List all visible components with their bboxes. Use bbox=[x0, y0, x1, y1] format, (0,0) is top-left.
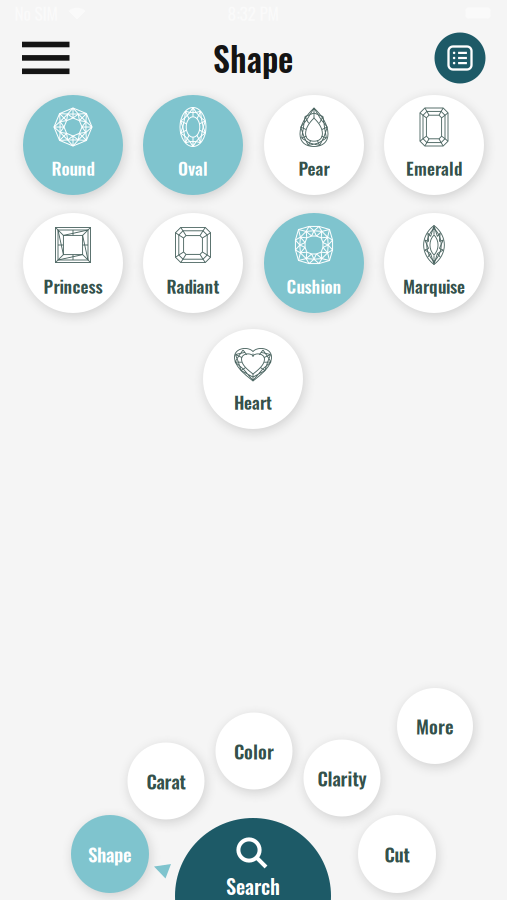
staticText: Cut bbox=[384, 840, 409, 868]
button[interactable]: Emerald bbox=[384, 95, 484, 195]
staticText: Heart bbox=[234, 389, 272, 415]
button[interactable]: Carat bbox=[127, 742, 204, 819]
staticText: Oval bbox=[178, 155, 208, 181]
button[interactable]: Oval bbox=[143, 95, 243, 195]
button[interactable]: Menu bbox=[8, 27, 84, 88]
staticText: Cushion bbox=[286, 273, 341, 299]
staticText: More bbox=[416, 712, 454, 740]
staticText: Clarity bbox=[317, 764, 366, 792]
staticText: Marquise bbox=[403, 273, 465, 299]
button[interactable]: List view bbox=[434, 32, 485, 83]
button[interactable]: Heart bbox=[203, 329, 303, 429]
staticText: Search bbox=[226, 871, 280, 900]
staticText: Radiant bbox=[166, 273, 219, 299]
button[interactable]: Color bbox=[215, 712, 292, 789]
staticText: Carat bbox=[146, 767, 185, 795]
staticText: Shape bbox=[88, 840, 132, 868]
staticText: Shape bbox=[213, 33, 293, 83]
staticText: Princess bbox=[43, 273, 102, 299]
button[interactable]: Round bbox=[23, 95, 123, 195]
staticText: Round bbox=[51, 155, 94, 181]
staticText: Pear bbox=[298, 155, 329, 181]
staticText: Emerald bbox=[406, 155, 462, 181]
button[interactable]: Clarity bbox=[303, 739, 380, 816]
button[interactable]: Marquise bbox=[384, 213, 484, 313]
button[interactable]: Cushion bbox=[264, 213, 364, 313]
button[interactable]: More bbox=[397, 688, 473, 764]
button[interactable]: Cut bbox=[358, 815, 436, 893]
button[interactable]: Shape bbox=[71, 815, 149, 893]
button[interactable]: Princess bbox=[23, 213, 123, 313]
button[interactable]: Pear bbox=[264, 95, 364, 195]
staticText: Color bbox=[234, 737, 274, 765]
button[interactable]: Search bbox=[175, 818, 331, 900]
button[interactable]: Radiant bbox=[143, 213, 243, 313]
